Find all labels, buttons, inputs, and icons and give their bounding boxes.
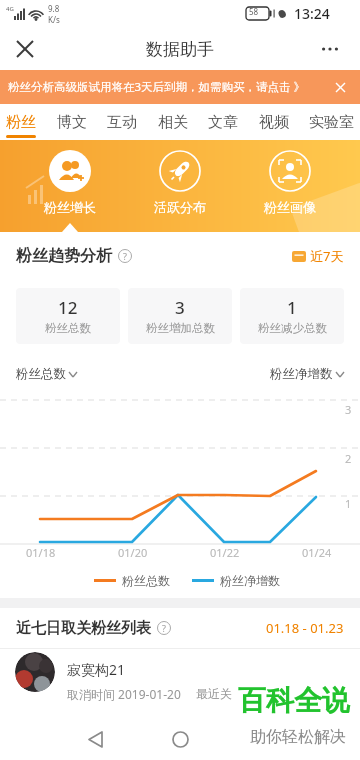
button[interactable]: 实验室 bbox=[309, 104, 354, 140]
button[interactable] bbox=[330, 77, 350, 97]
staticText: 助你轻松解决 bbox=[250, 727, 346, 747]
button[interactable]: 12 bbox=[16, 288, 120, 344]
staticText: 13:24 bbox=[294, 4, 330, 23]
button[interactable]: 3 bbox=[128, 288, 232, 344]
staticText: 3 bbox=[345, 402, 352, 417]
staticText: 数据助手 bbox=[146, 39, 214, 60]
button[interactable]: 粉丝总数 bbox=[16, 366, 77, 382]
staticText: 粉丝总数 bbox=[16, 366, 66, 382]
staticText: 近7天 bbox=[310, 247, 344, 265]
button[interactable]: 粉丝净增数 bbox=[270, 366, 344, 382]
staticText: 01.18 - 01.23 bbox=[266, 619, 344, 637]
button[interactable]: 粉丝增长 bbox=[15, 140, 125, 232]
button[interactable] bbox=[4, 28, 46, 70]
staticText: 粉丝总数 bbox=[45, 321, 91, 335]
staticText: 近七日取关粉丝列表 bbox=[16, 619, 151, 638]
button[interactable]: 1 bbox=[240, 288, 344, 344]
button[interactable]: 活跃分布 bbox=[125, 140, 235, 232]
staticText: 9.8 bbox=[48, 3, 60, 14]
button[interactable] bbox=[53, 718, 138, 760]
staticText: 粉丝减少总数 bbox=[258, 321, 327, 335]
button[interactable]: 博文 bbox=[57, 104, 87, 140]
staticText: 粉丝画像 bbox=[264, 199, 316, 215]
staticText: 01/24 bbox=[302, 545, 332, 560]
staticText: 01/20 bbox=[118, 545, 148, 560]
staticText: 3 bbox=[175, 296, 185, 319]
button[interactable]: 粉丝分析高级版试用将在3天后到期，如需购买，请点击 》 bbox=[0, 70, 360, 104]
button[interactable]: 粉丝画像 bbox=[235, 140, 345, 232]
button[interactable]: 寂寞构21 bbox=[0, 649, 360, 718]
button[interactable] bbox=[138, 718, 223, 760]
staticText: 寂寞构21 bbox=[67, 660, 126, 679]
staticText: 1 bbox=[287, 296, 297, 319]
staticText: K/s bbox=[48, 14, 60, 25]
staticText: 粉丝总数 bbox=[122, 573, 170, 588]
staticText: 实验室 bbox=[309, 113, 354, 132]
button[interactable]: 文章 bbox=[208, 104, 238, 140]
staticText: 相关 bbox=[158, 113, 188, 132]
staticText: ? bbox=[162, 622, 166, 634]
button[interactable]: 相关 bbox=[158, 104, 188, 140]
staticText: 粉丝分析高级版试用将在3天后到期，如需购买，请点击 》 bbox=[8, 79, 306, 95]
staticText: 视频 bbox=[259, 113, 289, 132]
button[interactable]: 近7天 bbox=[292, 247, 344, 265]
staticText: 粉丝增长 bbox=[44, 199, 96, 215]
staticText: 粉丝 bbox=[6, 113, 36, 132]
staticText: 1 bbox=[345, 496, 352, 511]
staticText: 互动 bbox=[107, 113, 137, 132]
staticText: 文章 bbox=[208, 113, 238, 132]
button[interactable] bbox=[223, 718, 308, 760]
staticText: 取消时间 2019-01-20 bbox=[67, 686, 181, 702]
staticText: 2 bbox=[345, 451, 352, 466]
button[interactable] bbox=[311, 28, 349, 70]
staticText: 最近关注 bbox=[196, 686, 244, 701]
staticText: 58 bbox=[249, 6, 259, 17]
staticText: ? bbox=[123, 250, 127, 262]
staticText: 博文 bbox=[57, 113, 87, 132]
staticText: 粉丝净增数 bbox=[270, 366, 333, 382]
staticText: 粉丝净增数 bbox=[220, 573, 280, 588]
button[interactable]: 视频 bbox=[259, 104, 289, 140]
staticText: 百科全说 bbox=[238, 683, 350, 718]
staticText: 4G bbox=[6, 5, 14, 13]
staticText: 粉丝增加总数 bbox=[146, 321, 215, 335]
staticText: 01/22 bbox=[210, 545, 240, 560]
staticText: 01/18 bbox=[26, 545, 56, 560]
staticText: 活跃分布 bbox=[154, 199, 206, 215]
staticText: 粉丝趋势分析 bbox=[16, 246, 112, 266]
staticText: 12 bbox=[58, 296, 78, 319]
button[interactable]: 互动 bbox=[107, 104, 137, 140]
button[interactable]: 粉丝 bbox=[6, 104, 36, 140]
